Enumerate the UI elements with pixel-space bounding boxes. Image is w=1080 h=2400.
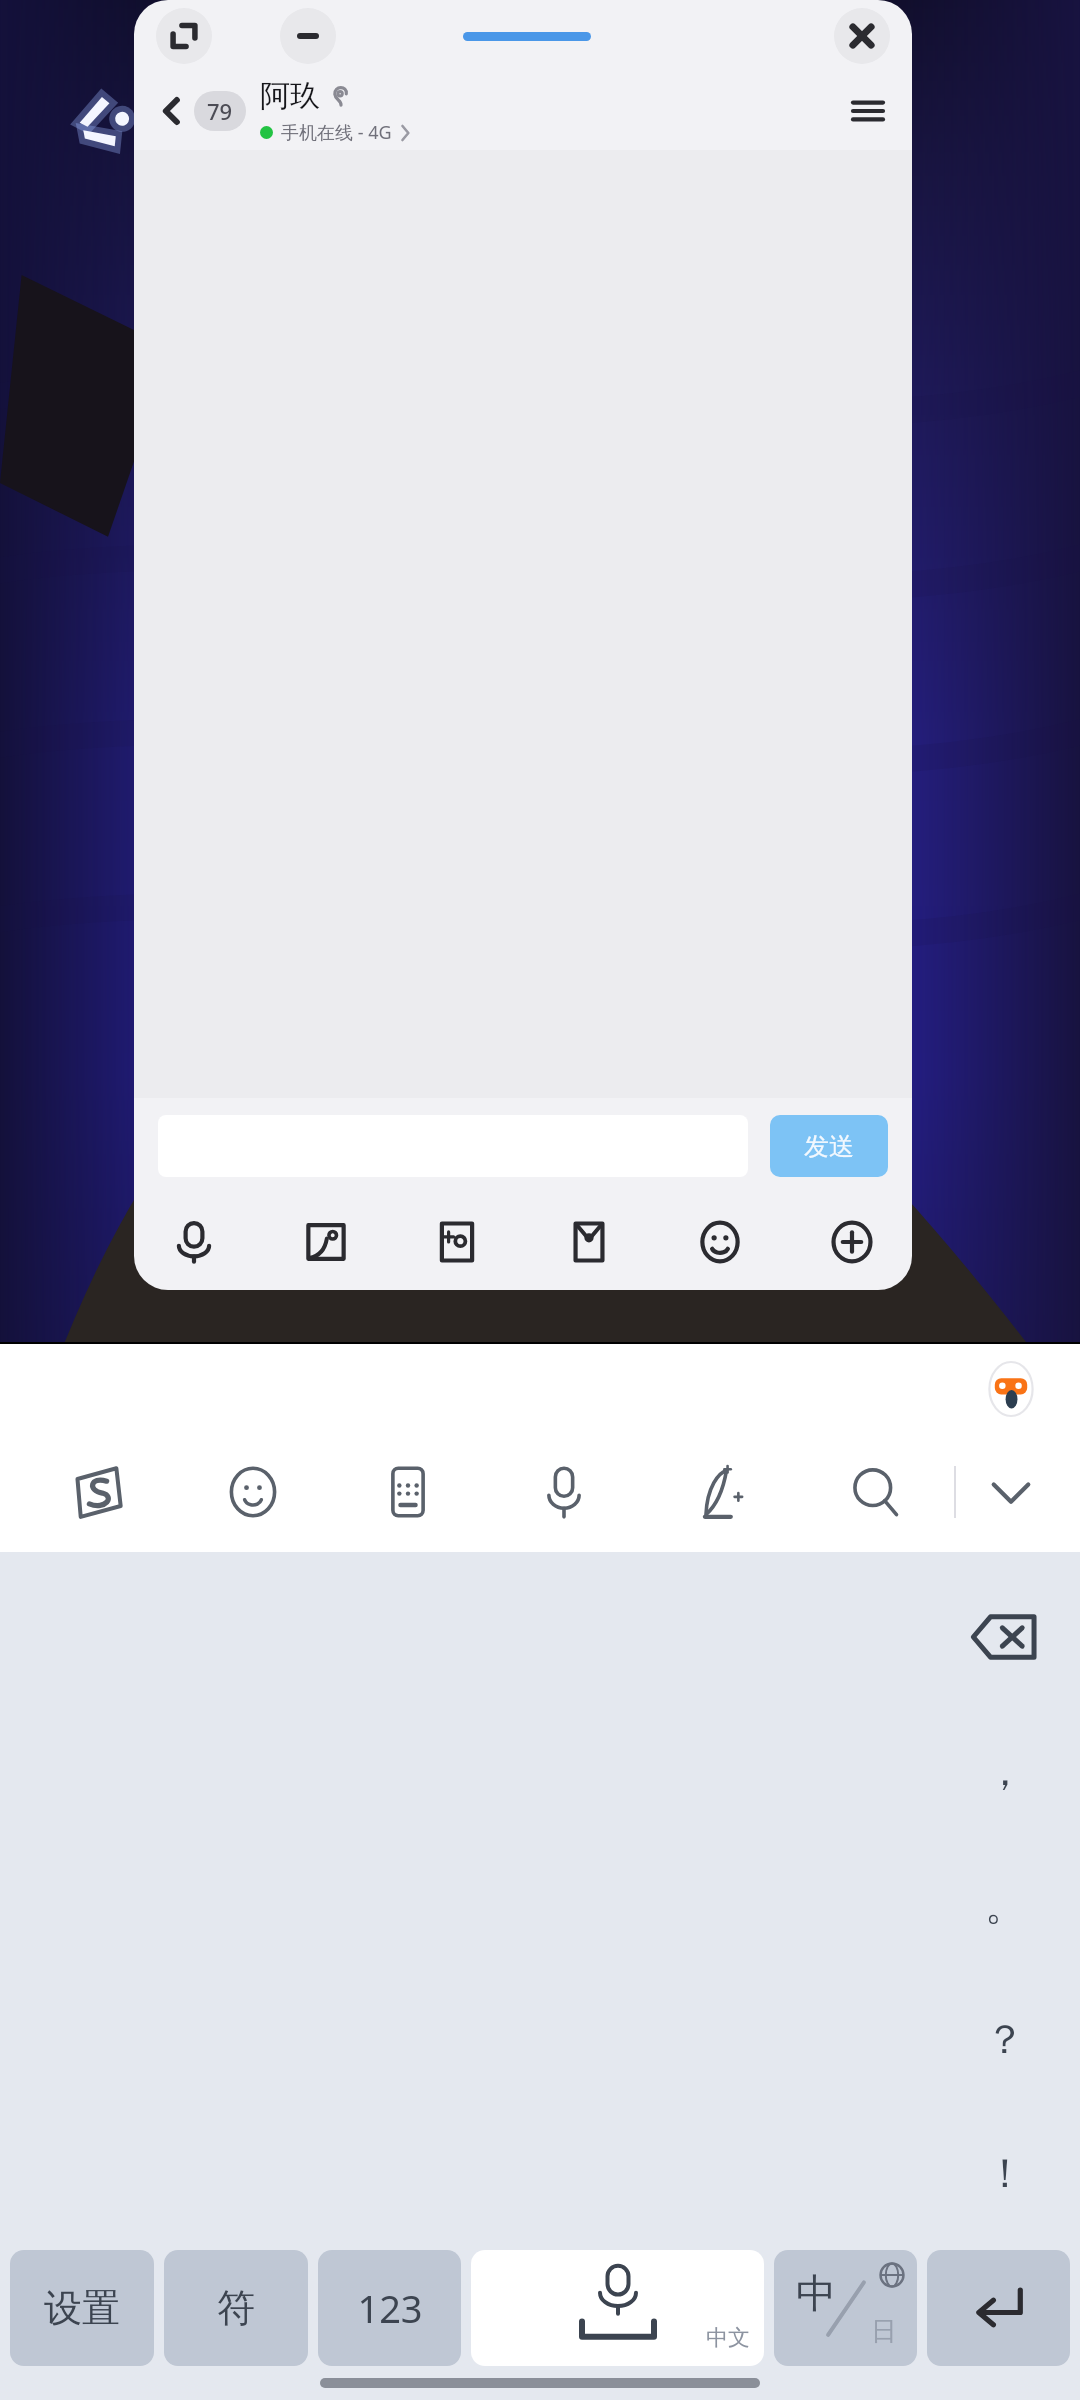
button[interactable]: Assistant (984, 1362, 1038, 1416)
button[interactable]: Emoji (175, 1437, 330, 1547)
button[interactable]: Keyboard layout (330, 1437, 486, 1547)
staticText: 符 (217, 2284, 255, 2332)
button[interactable]: Enter (927, 2250, 1070, 2366)
button[interactable]: ， (930, 1704, 1080, 1838)
button[interactable]: 阿玖 (260, 77, 844, 145)
staticText: 设置 (44, 2284, 120, 2332)
button[interactable]: ！ (930, 2106, 1080, 2240)
staticText: 123 (357, 2282, 423, 2334)
button[interactable]: Voice message (158, 1206, 230, 1278)
staticText: 中文 (706, 2324, 750, 2352)
button[interactable]: Space (471, 2250, 764, 2366)
button[interactable]: Sogou (20, 1437, 175, 1547)
staticText: 日 (871, 2315, 897, 2348)
button[interactable]: Sticker (421, 1206, 493, 1278)
button[interactable]: 符 (164, 2250, 308, 2366)
button[interactable]: ？ (930, 1972, 1080, 2106)
staticText: 手机在线 - 4G (281, 120, 392, 145)
staticText: ？ (985, 2014, 1025, 2064)
button[interactable]: Red packet (553, 1206, 625, 1278)
button[interactable]: 发送 (770, 1115, 888, 1177)
staticText: 中 (796, 2268, 836, 2318)
button[interactable]: Search (798, 1437, 954, 1547)
staticText: 发送 (804, 1131, 854, 1162)
button[interactable]: Hide keyboard (956, 1437, 1066, 1547)
button[interactable]: Backspace (930, 1570, 1080, 1704)
button[interactable]: More (816, 1206, 888, 1278)
button[interactable]: Expand (156, 8, 212, 64)
button[interactable]: Voice input (486, 1437, 642, 1547)
staticText: ！ (985, 2148, 1025, 2198)
button[interactable]: Minimize (280, 8, 336, 64)
button[interactable]: Close (834, 8, 890, 64)
button[interactable]: 。 (930, 1838, 1080, 1972)
button[interactable]: 79 (194, 91, 246, 131)
staticText: ， (985, 1746, 1025, 1796)
staticText: 阿玖 (260, 77, 320, 115)
staticText: 。 (985, 1880, 1025, 1930)
button[interactable]: Switch language (774, 2250, 917, 2366)
button[interactable]: Emoji (684, 1206, 756, 1278)
button[interactable]: Back (150, 89, 194, 133)
button[interactable]: 123 (318, 2250, 461, 2366)
staticText: 79 (207, 96, 233, 126)
button[interactable]: 设置 (10, 2250, 154, 2366)
button[interactable]: Handwriting (642, 1437, 798, 1547)
button[interactable]: Menu (844, 87, 892, 135)
button[interactable]: Photo (290, 1206, 362, 1278)
